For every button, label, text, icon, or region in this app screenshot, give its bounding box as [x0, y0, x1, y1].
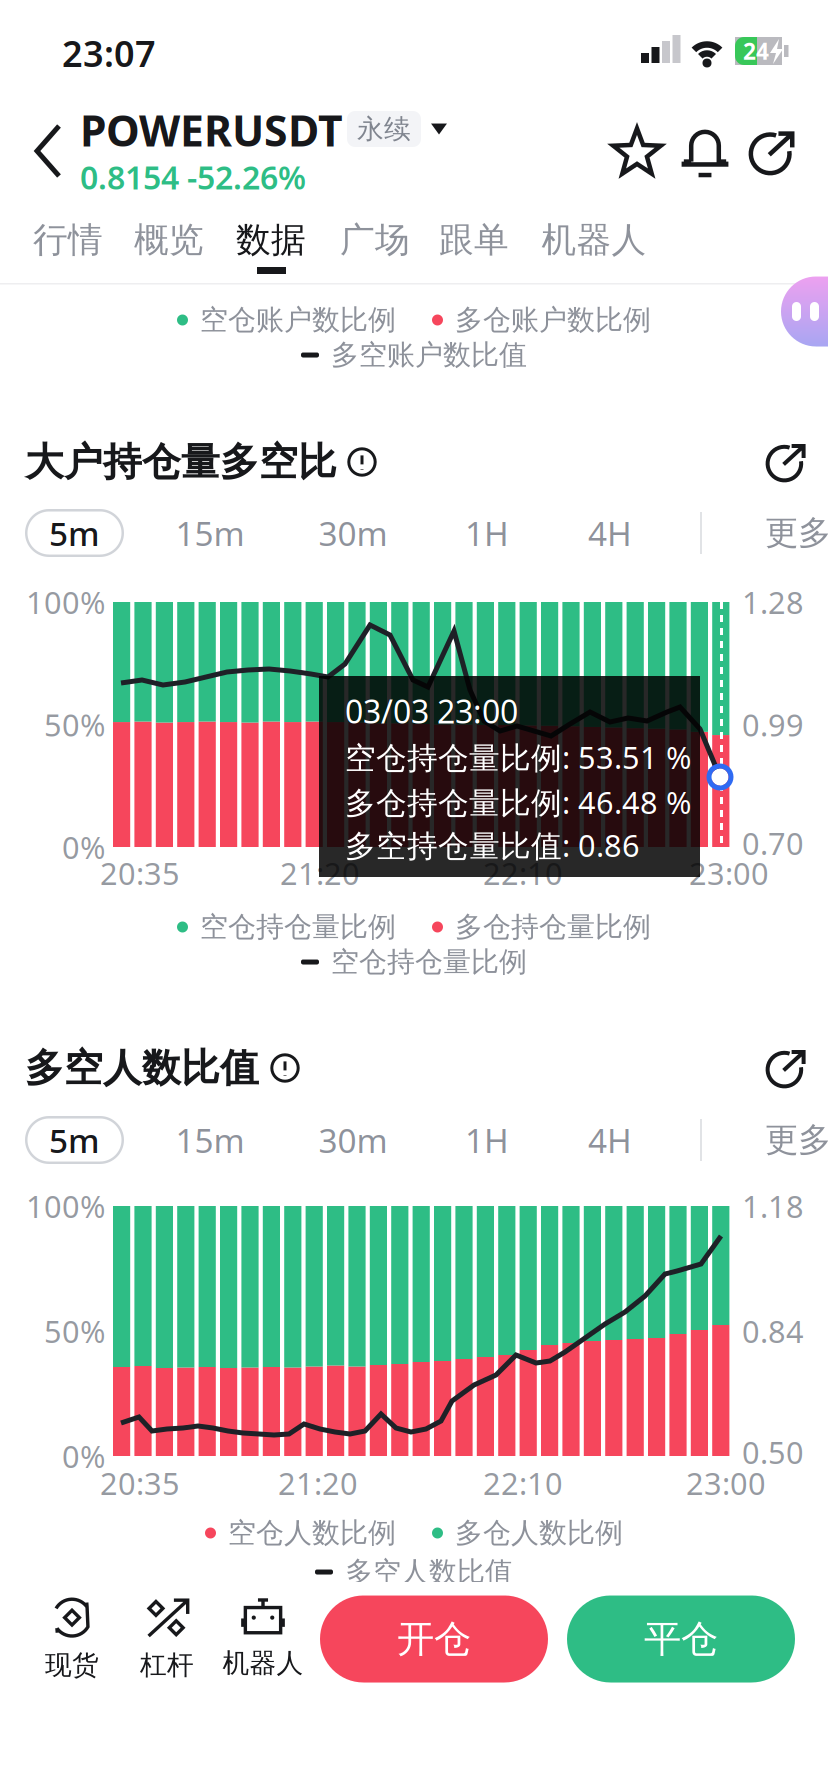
staticText: 20:35 — [100, 1463, 180, 1503]
staticText: 03/03 23:00 — [345, 690, 518, 732]
button[interactable]: 30m — [318, 1116, 387, 1164]
staticText: 0.70 — [742, 823, 804, 863]
staticText: 多仓账户数比例 — [455, 303, 651, 337]
staticText: 开仓 — [397, 1616, 471, 1662]
staticText: 行情 — [33, 219, 103, 261]
button[interactable]: Alerts — [682, 128, 728, 176]
staticText: 1.18 — [742, 1186, 804, 1226]
staticText: 空仓人数比例 — [228, 1516, 396, 1550]
button[interactable]: 15m — [175, 509, 244, 557]
staticText: 更多 — [765, 512, 828, 553]
staticText: 100% — [26, 582, 105, 622]
staticText: 21:20 — [280, 853, 360, 893]
staticText: 30m — [318, 1118, 387, 1162]
staticText: 多仓人数比例 — [455, 1516, 623, 1550]
button[interactable]: 行情 — [33, 216, 103, 264]
button[interactable]: 现货 — [45, 1595, 99, 1681]
button[interactable]: 概览 — [134, 216, 204, 264]
staticText: 15m — [175, 511, 244, 555]
staticText: 1H — [465, 511, 509, 555]
staticText: 多仓持仓量比例 — [455, 910, 651, 944]
button[interactable]: 平仓 — [567, 1595, 795, 1682]
staticText: 1.28 — [742, 582, 804, 622]
staticText: 50% — [44, 1311, 105, 1351]
staticText: 1H — [465, 1118, 509, 1162]
button[interactable]: 开仓 — [320, 1595, 548, 1682]
button[interactable]: Share chart — [766, 1048, 806, 1088]
staticText: POWERUSDT — [80, 102, 343, 158]
staticText: 30m — [318, 511, 387, 555]
staticText: 跟单 — [439, 219, 509, 261]
button[interactable]: 更多 — [765, 1116, 828, 1164]
staticText: 0.84 — [742, 1311, 804, 1351]
staticText: 多空账户数比值 — [331, 338, 527, 372]
button[interactable]: 5m — [25, 1116, 124, 1164]
button[interactable]: 广场 — [340, 216, 410, 264]
button[interactable]: 15m — [175, 1116, 244, 1164]
staticText: 23:07 — [62, 29, 156, 77]
staticText: 杠杆 — [140, 1649, 194, 1681]
staticText: 50% — [44, 704, 105, 745]
button[interactable]: 1H — [465, 509, 509, 557]
button[interactable]: 机器人 — [541, 216, 646, 264]
button[interactable]: Assistant — [781, 276, 828, 346]
button[interactable]: Share — [749, 129, 795, 175]
staticText: 机器人 — [541, 219, 646, 261]
button[interactable]: 5m — [25, 509, 124, 557]
staticText: 空仓持仓量比例 — [331, 945, 527, 979]
button[interactable]: 4H — [588, 1116, 632, 1164]
staticText: 5m — [49, 511, 100, 555]
staticText: 数据 — [236, 219, 306, 261]
staticText: 广场 — [340, 219, 410, 261]
staticText: 21:20 — [278, 1463, 358, 1503]
button[interactable]: 跟单 — [439, 216, 509, 264]
button[interactable]: 4H — [588, 509, 632, 557]
button[interactable]: 30m — [318, 509, 387, 557]
staticText: 永续 — [357, 113, 411, 145]
button[interactable]: Share chart — [766, 442, 806, 482]
staticText: 4H — [588, 1118, 632, 1162]
staticText: 空仓账户数比例 — [200, 303, 396, 337]
staticText: 现货 — [45, 1649, 99, 1681]
staticText: 24 — [743, 36, 769, 66]
button[interactable]: Back — [37, 126, 59, 176]
staticText: 5m — [49, 1118, 100, 1162]
button[interactable]: 永续 — [347, 111, 447, 147]
staticText: 0.50 — [742, 1432, 804, 1472]
button[interactable]: 更多 — [765, 509, 828, 557]
button[interactable]: 杠杆 — [140, 1595, 194, 1681]
staticText: 0.99 — [742, 704, 804, 745]
staticText: 4H — [588, 511, 632, 555]
staticText: 多仓持仓量比例: 46.48 % — [345, 782, 691, 822]
staticText: 0% — [62, 1436, 105, 1476]
staticText: 20:35 — [100, 853, 180, 893]
button[interactable]: 数据 — [236, 216, 306, 264]
staticText: 22:10 — [483, 1463, 563, 1503]
button[interactable]: 1H — [465, 1116, 509, 1164]
staticText: 概览 — [134, 219, 204, 261]
staticText: 多空持仓量比值: 0.86 — [345, 825, 640, 865]
staticText: 更多 — [765, 1119, 828, 1160]
staticText: 平仓 — [644, 1616, 718, 1662]
staticText: 多空人数比值 — [345, 1555, 513, 1589]
staticText: 23:00 — [686, 1463, 766, 1503]
staticText: 23:00 — [689, 853, 769, 893]
staticText: 空仓持仓量比例: 53.51 % — [345, 737, 691, 777]
staticText: 22:10 — [483, 853, 563, 893]
staticText: 大户持仓量多空比 — [25, 438, 337, 486]
staticText: 15m — [175, 1118, 244, 1162]
staticText: 0% — [62, 827, 105, 867]
staticText: 100% — [26, 1186, 105, 1226]
staticText: 多空人数比值 — [25, 1044, 259, 1092]
staticText: 0.8154 -52.26% — [80, 156, 306, 198]
button[interactable]: 机器人 — [222, 1597, 303, 1679]
staticText: 机器人 — [222, 1647, 303, 1679]
staticText: 空仓持仓量比例 — [200, 910, 396, 944]
button[interactable]: Favorite — [613, 128, 661, 176]
